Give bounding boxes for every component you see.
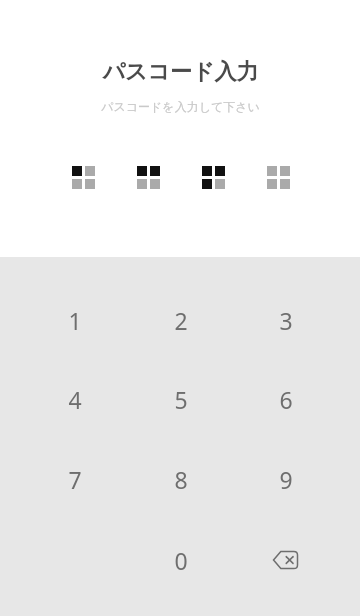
button[interactable]: 6 — [233, 360, 338, 439]
staticText: 5 — [174, 384, 188, 415]
staticText: 0 — [174, 545, 188, 576]
button[interactable]: Delete — [233, 520, 338, 600]
staticText: パスコードを入力して下さい — [101, 99, 260, 114]
button[interactable]: 0 — [128, 520, 233, 600]
button[interactable]: 5 — [128, 360, 233, 439]
button[interactable]: 4 — [22, 360, 128, 439]
button[interactable]: 1 — [22, 281, 128, 360]
staticText: 8 — [174, 464, 188, 495]
staticText: 7 — [68, 464, 82, 495]
staticText: 2 — [174, 305, 188, 336]
staticText: 6 — [279, 384, 293, 415]
staticText: 3 — [279, 305, 293, 336]
button[interactable]: 7 — [22, 439, 128, 520]
staticText: 4 — [68, 384, 82, 415]
button[interactable]: 2 — [128, 281, 233, 360]
staticText: 9 — [279, 464, 293, 495]
button[interactable]: 8 — [128, 439, 233, 520]
staticText: パスコード入力 — [102, 58, 259, 86]
button[interactable]: 9 — [233, 439, 338, 520]
button[interactable]: 3 — [233, 281, 338, 360]
staticText: 1 — [68, 305, 82, 336]
